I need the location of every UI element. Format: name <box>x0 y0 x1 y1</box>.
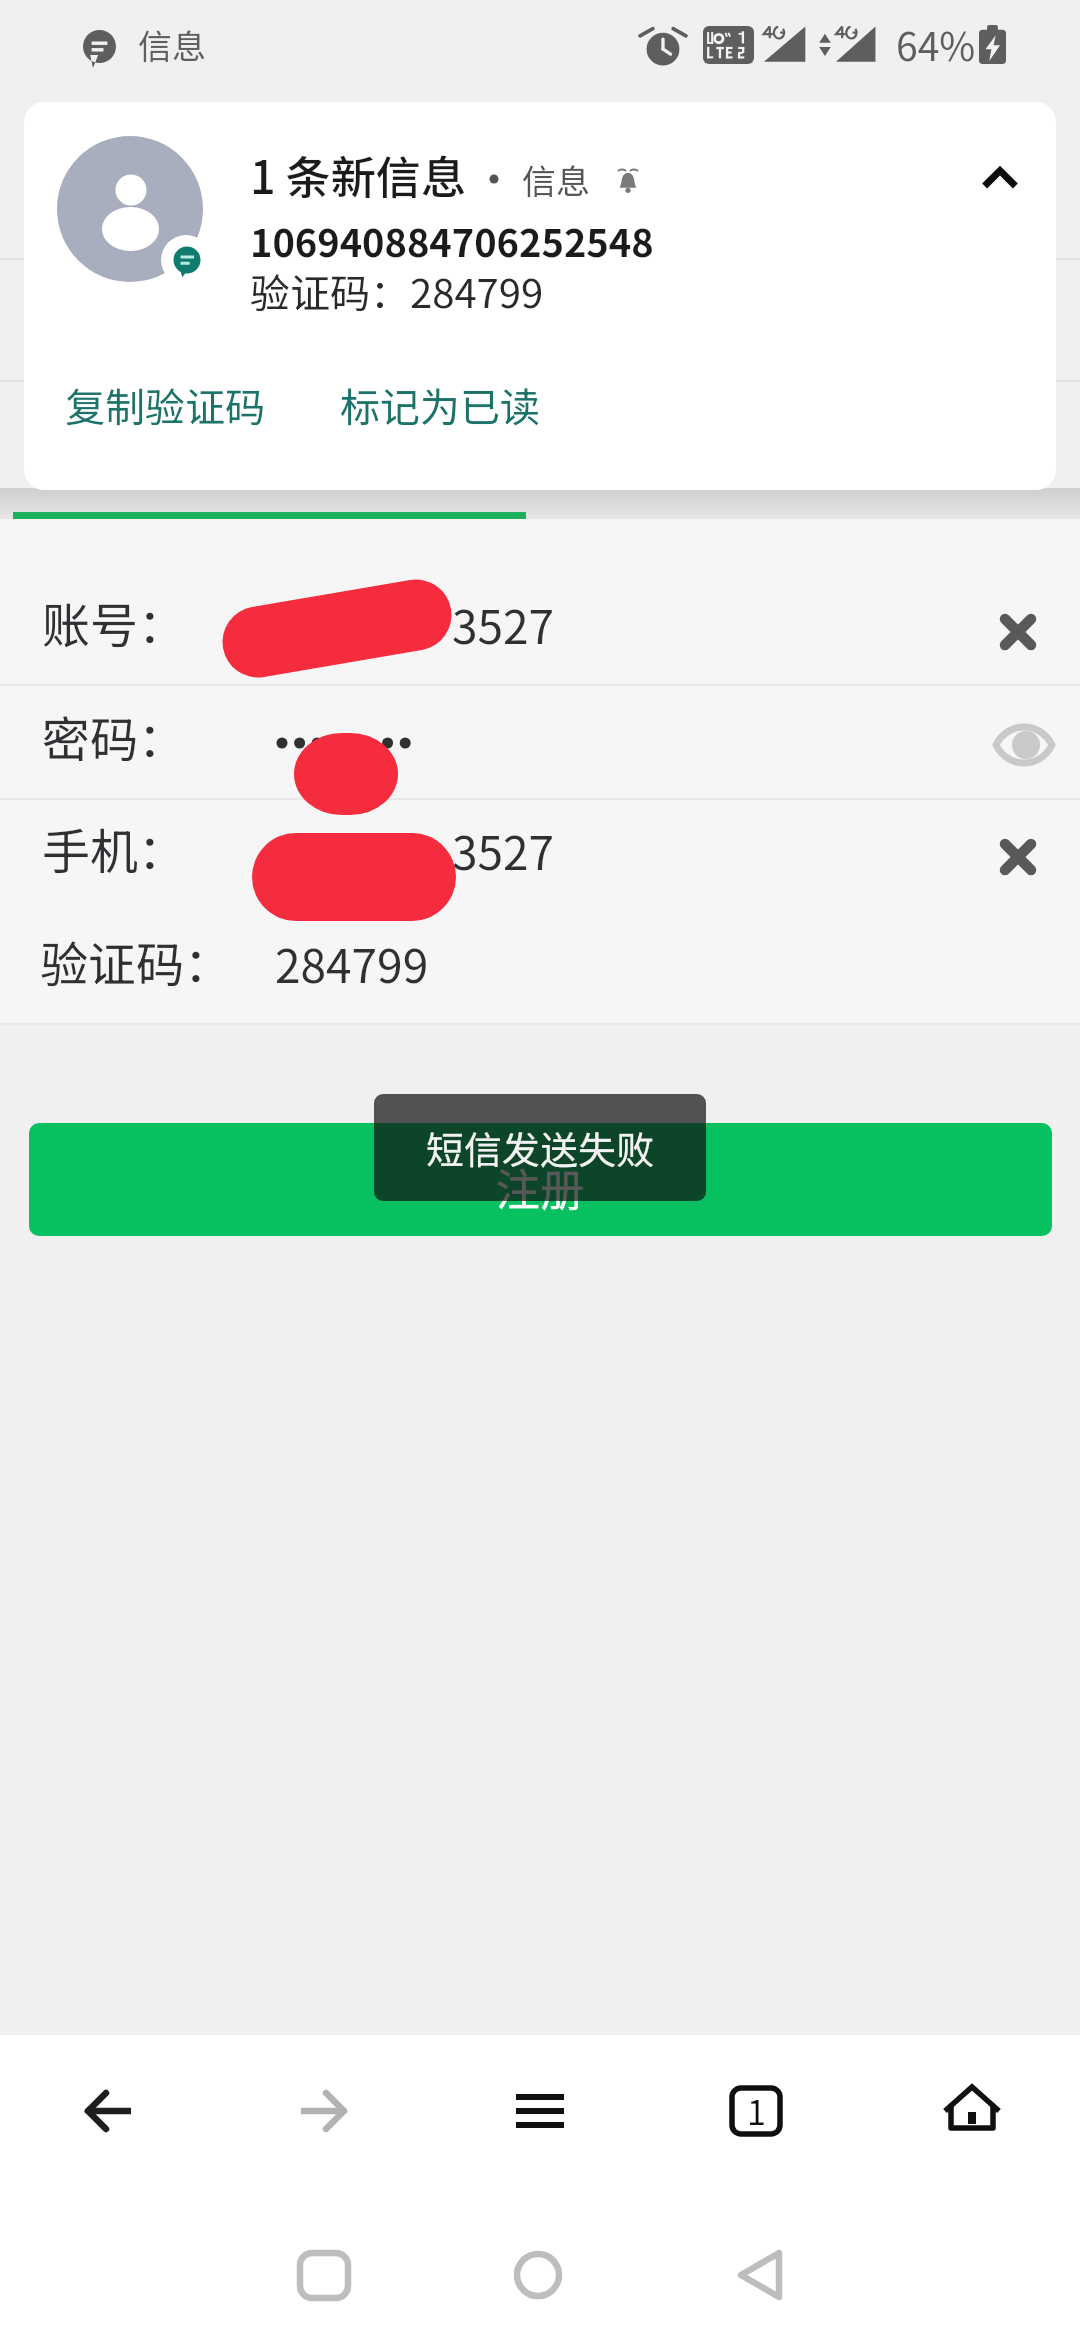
button[interactable]: 信息 <box>70 8 219 88</box>
staticText: 短信发送失败 <box>426 1120 655 1175</box>
button[interactable]: 注册 <box>29 1123 1052 1236</box>
button[interactable]: 标记为已读 <box>310 354 570 456</box>
staticText: 账号： <box>42 587 187 657</box>
button[interactable]: Show password <box>976 697 1072 793</box>
button[interactable]: Home <box>490 2227 586 2323</box>
staticText: 验证码： <box>40 926 233 996</box>
staticText: 信息 <box>138 20 206 69</box>
staticText: 64% <box>896 16 976 72</box>
staticText: 注册 <box>496 1155 584 1219</box>
button[interactable]: Forward <box>276 2063 372 2159</box>
button[interactable]: Back <box>60 2063 156 2159</box>
button[interactable]: Collapse <box>954 132 1046 224</box>
staticText: 手机： <box>42 813 187 883</box>
button[interactable]: Menu <box>492 2063 588 2159</box>
button[interactable]: 1 条新信息 <box>24 102 1056 490</box>
button[interactable]: Clear account <box>970 584 1066 680</box>
button[interactable]: Tabs <box>708 2063 804 2159</box>
button[interactable]: 复制验证码 <box>35 354 295 456</box>
staticText: 密码： <box>42 701 187 771</box>
staticText: 验证码：284799 <box>250 262 544 320</box>
staticText: 标记为已读 <box>340 376 540 434</box>
staticText: 1 条新信息 <box>250 142 466 207</box>
staticText: 3527 <box>452 817 555 884</box>
staticText: 信息 <box>522 155 590 204</box>
button[interactable]: Home <box>924 2063 1020 2159</box>
staticText: 复制验证码 <box>65 376 265 434</box>
button[interactable]: Clear phone <box>970 809 1066 905</box>
staticText: 3527 <box>452 591 555 658</box>
button[interactable]: Back <box>713 2227 809 2323</box>
staticText: 1 <box>747 2086 766 2135</box>
staticText: 284799 <box>275 930 429 997</box>
staticText: 106940884706252548 <box>250 213 654 268</box>
button[interactable]: Recents <box>276 2227 372 2323</box>
